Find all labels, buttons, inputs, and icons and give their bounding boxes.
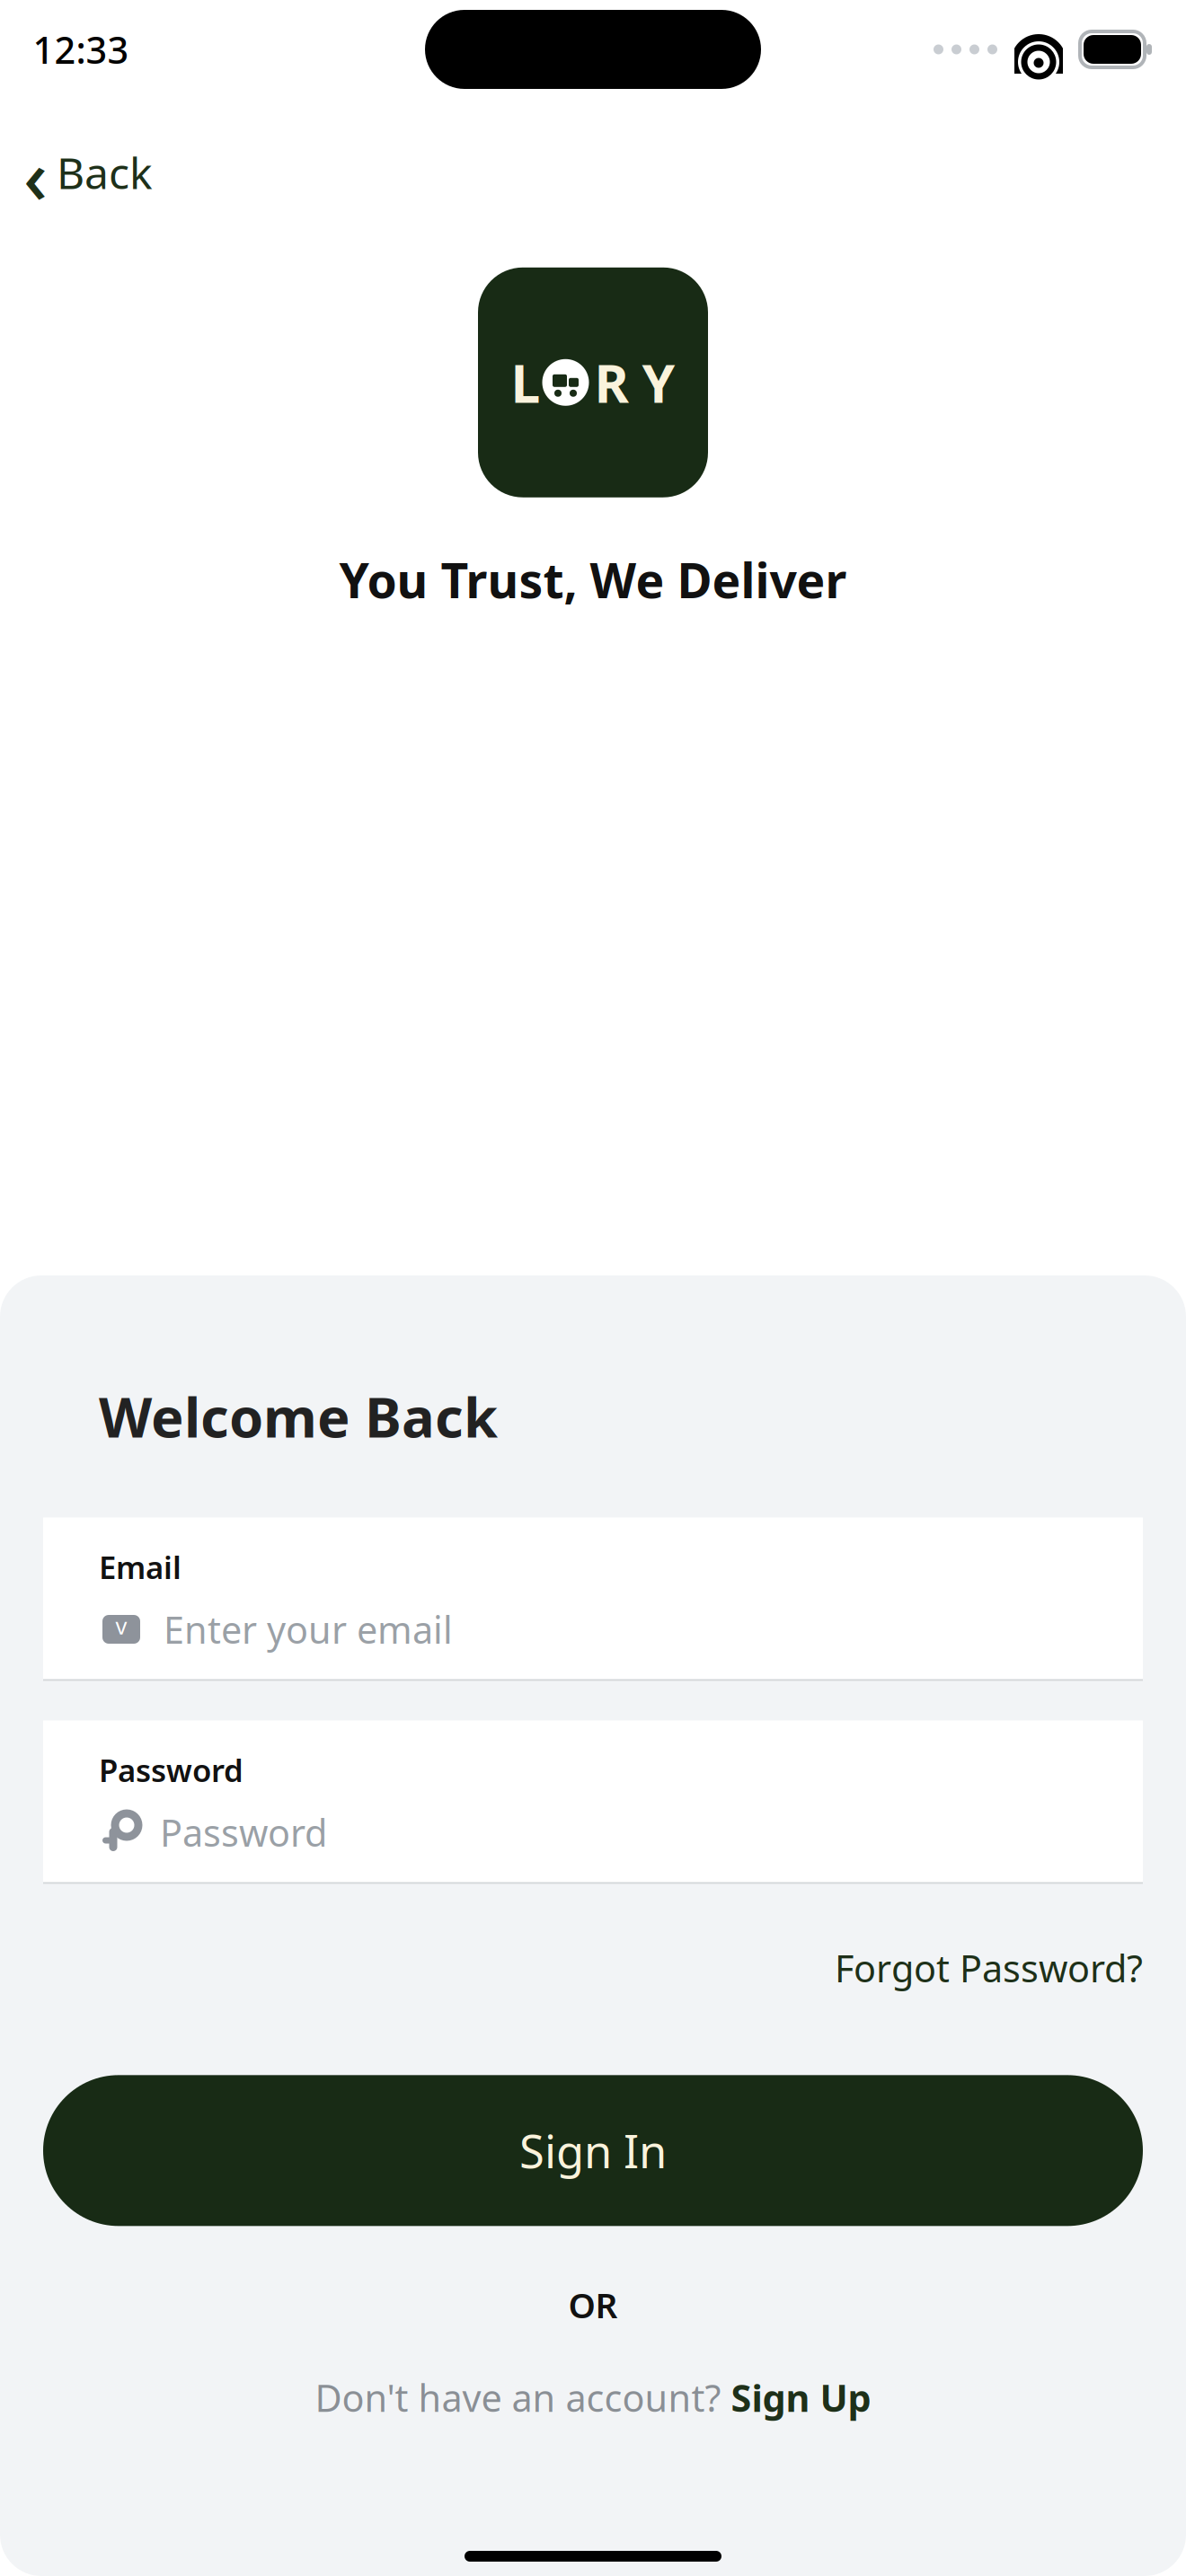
staticText: You Trust, We Deliver [339, 548, 847, 611]
staticText: Sign In [519, 2120, 667, 2181]
staticText: R Y [594, 347, 675, 417]
button[interactable]: Password [43, 1720, 1143, 1884]
staticText: Welcome Back [99, 1380, 498, 1453]
staticText: Password [99, 1749, 243, 1790]
staticText: Back [57, 144, 153, 201]
button[interactable]: ‹ [0, 122, 167, 228]
staticText: Password [160, 1808, 327, 1857]
staticText: ‹ [23, 126, 48, 224]
button[interactable]: Don't have an account? [0, 2366, 1186, 2429]
staticText: v [115, 1611, 127, 1641]
staticText: 12:33 [33, 25, 129, 74]
staticText: Sign Up [731, 2373, 871, 2422]
staticText: Enter your email [164, 1605, 453, 1654]
button[interactable]: Forgot Password? [828, 1936, 1150, 2000]
staticText: OR [568, 2282, 618, 2328]
staticText: Don't have an account? [315, 2373, 731, 2422]
staticText: Email [99, 1546, 181, 1587]
button[interactable]: Email [43, 1517, 1143, 1681]
staticText: L [511, 347, 540, 417]
button[interactable]: Sign In [43, 2075, 1143, 2226]
staticText: Forgot Password? [835, 1943, 1143, 1992]
